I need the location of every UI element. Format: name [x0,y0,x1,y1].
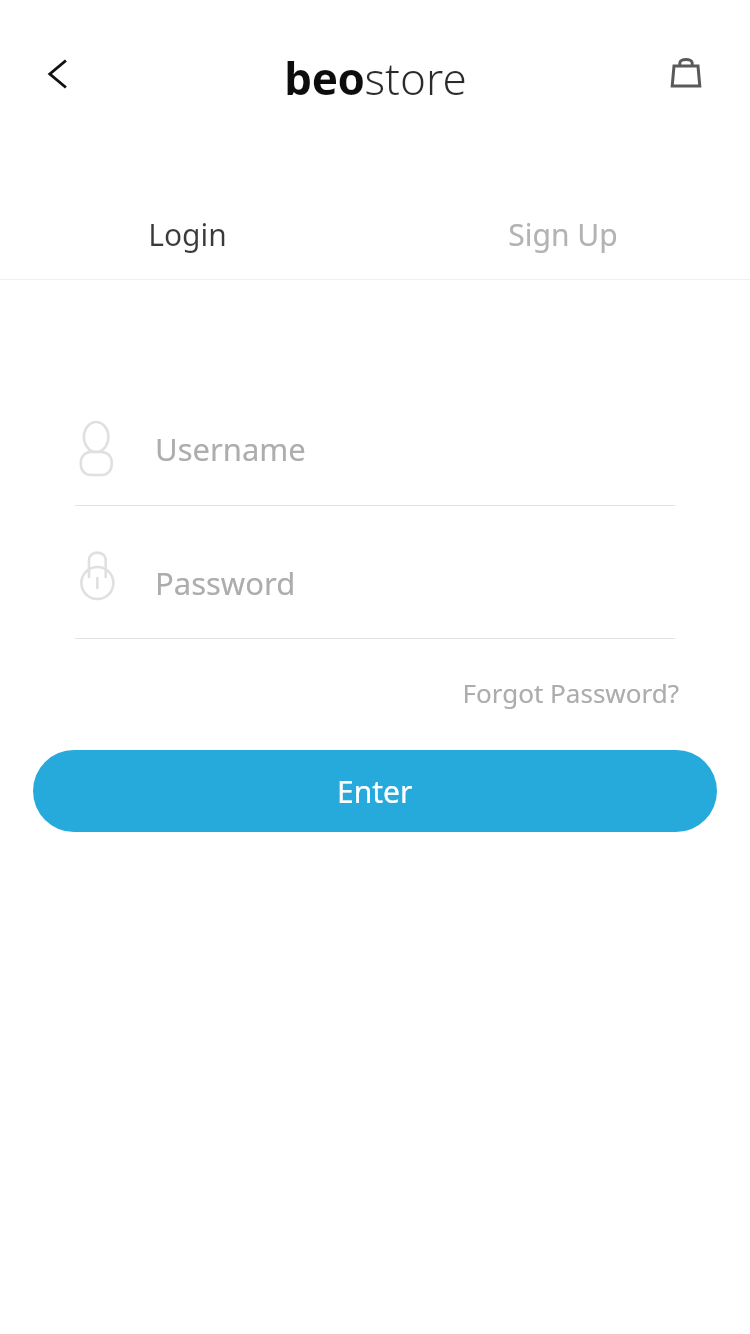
staticText: Login [148,214,227,255]
button[interactable]: Back [24,40,92,108]
staticText: Sign Up [508,214,618,255]
staticText: Enter [337,771,413,812]
button[interactable]: Forgot Password? [455,668,679,716]
button[interactable]: Shopping bag [652,40,720,108]
staticText: beostore [284,48,467,104]
button[interactable]: Enter [33,750,717,832]
button[interactable]: Login [0,190,375,279]
staticText: Forgot Password? [462,675,679,710]
staticText: Username [155,428,306,470]
staticText: Password [155,562,296,604]
button[interactable]: Sign Up [375,190,750,279]
